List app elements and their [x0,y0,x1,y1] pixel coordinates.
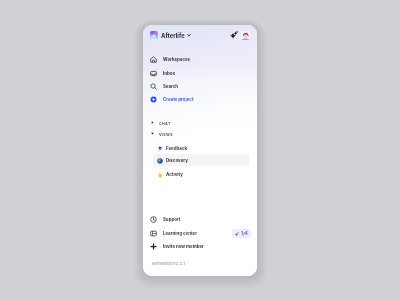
button[interactable]: Search [143,81,257,92]
button[interactable]: Inbox [143,68,257,79]
staticText: Support [163,217,181,222]
staticText: CHAT [159,121,171,125]
staticText: Activity [166,172,184,177]
button[interactable]: Profile [241,31,250,40]
staticText: 1/4 [241,231,248,236]
button[interactable]: AI assistant [230,31,238,39]
button[interactable]: Activity [153,168,249,180]
button[interactable]: VIEWS [143,129,257,138]
button[interactable]: Support [143,214,257,225]
staticText: Invite new member [163,244,204,249]
staticText: Afterlife [161,32,185,39]
staticText: Search [163,84,179,89]
button[interactable]: Feedback [153,142,249,154]
button[interactable]: Create project [143,94,257,105]
staticText: Discovery [166,158,188,163]
button[interactable]: Discovery [153,154,249,166]
staticText: Workspaces [163,57,191,62]
staticText: Create project [163,97,194,102]
staticText: NetWatch v2.2.1 [152,261,186,266]
button[interactable]: Workspaces [143,54,257,65]
button[interactable]: Invite new member [143,241,257,252]
staticText: Learning center [163,231,197,236]
button[interactable]: Learning center [143,228,257,239]
staticText: Inbox [163,71,175,76]
staticText: Feedback [166,146,187,151]
staticText: VIEWS [159,132,173,136]
button[interactable]: CHAT [143,118,257,127]
button[interactable]: Afterlife [150,31,191,39]
